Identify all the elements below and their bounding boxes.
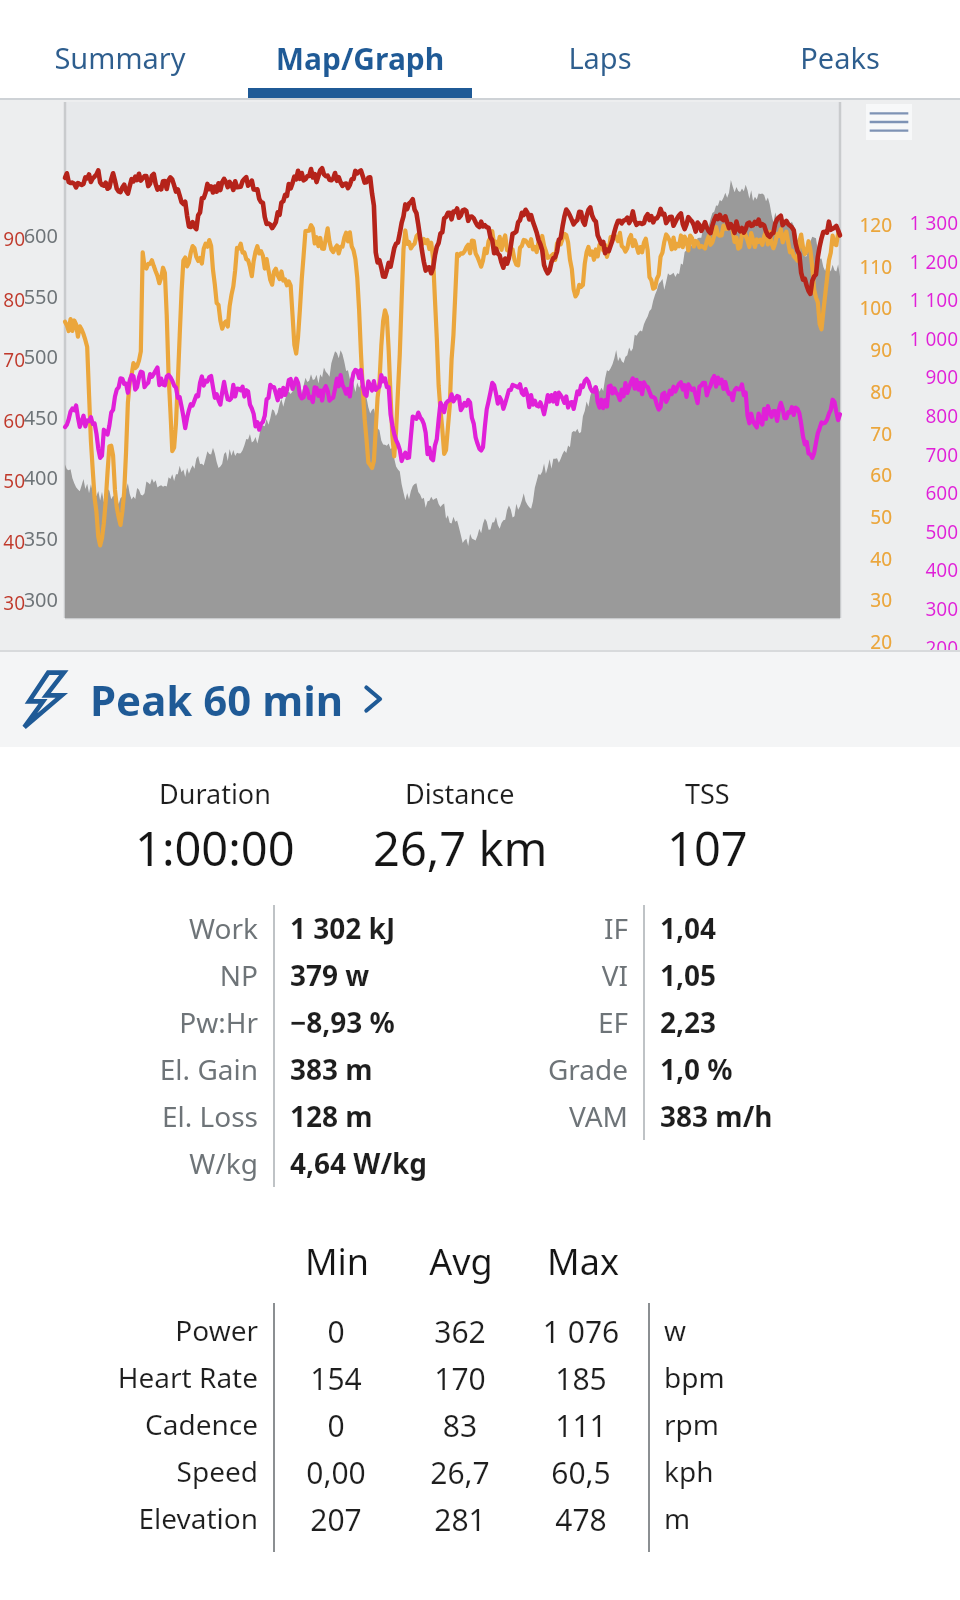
staticText: 400 [0, 464, 58, 491]
staticText: VI [440, 956, 628, 994]
staticText: 1 000 [878, 326, 958, 352]
staticText: kph [664, 1452, 714, 1490]
button[interactable]: Map/Graph [240, 0, 480, 100]
staticText: Cadence [40, 1405, 258, 1443]
staticText: Work [60, 909, 258, 947]
staticText: 128 m [290, 1097, 373, 1135]
staticText: Peaks [720, 38, 960, 77]
staticText: 550 [0, 283, 58, 310]
staticText: TSS [685, 775, 730, 812]
staticText: 60 [848, 462, 892, 488]
staticText: 90 [0, 226, 25, 252]
staticText: bpm [664, 1358, 725, 1396]
staticText: 0 [280, 1405, 392, 1446]
other: Peak power [16, 669, 68, 729]
staticText: 90 [848, 337, 892, 363]
button[interactable]: Laps [480, 0, 720, 100]
staticText: 500 [0, 343, 58, 370]
staticText: 26,7 km [373, 816, 548, 879]
staticText: 4,64 W/kg [290, 1144, 428, 1182]
staticText: 110 [848, 254, 892, 280]
staticText: 70 [848, 421, 892, 447]
button[interactable]: Summary [0, 0, 240, 100]
staticText: 700 [878, 442, 958, 468]
staticText: Summary [0, 38, 240, 77]
staticText: 362 [404, 1311, 516, 1352]
staticText: 70 [0, 347, 25, 373]
staticText: 500 [878, 519, 958, 545]
staticText: 800 [878, 403, 958, 429]
staticText: 1:00:00 [135, 816, 295, 879]
staticText: 20 [0, 650, 25, 676]
staticText: Duration [159, 775, 271, 812]
staticText: El. Loss [60, 1097, 258, 1135]
staticText: 478 [516, 1499, 646, 1540]
staticText: 300 [878, 596, 958, 622]
button[interactable]: Chart legend [866, 104, 912, 140]
staticText: 207 [280, 1499, 392, 1540]
staticText: 40 [0, 529, 25, 555]
staticText: VAM [440, 1097, 628, 1135]
staticText: 26,7 [404, 1452, 516, 1493]
staticText: EF [440, 1003, 628, 1041]
staticText: 50 [0, 468, 25, 494]
staticText: W/kg [60, 1144, 258, 1182]
staticText: 20 [848, 629, 892, 655]
staticText: 379 w [290, 956, 370, 994]
staticText: 60,5 [516, 1452, 646, 1493]
staticText: 80 [848, 379, 892, 405]
button[interactable]: Peak power [0, 650, 960, 747]
staticText: 383 m [290, 1050, 373, 1088]
staticText: Pw:Hr [60, 1003, 258, 1041]
staticText: 50 [848, 504, 892, 530]
staticText: 1 100 [878, 287, 958, 313]
staticText: IF [440, 909, 628, 947]
staticText: 2,23 [660, 1003, 717, 1041]
staticText: 83 [404, 1405, 516, 1446]
staticText: rpm [664, 1405, 719, 1443]
staticText: 250 [0, 646, 58, 673]
staticText: 60 [0, 408, 25, 434]
staticText: 0 [280, 1311, 392, 1352]
staticText: 1 302 kJ [290, 909, 396, 947]
staticText: 1 300 [878, 210, 958, 236]
staticText: 350 [0, 525, 58, 552]
staticText: 80 [0, 287, 25, 313]
staticText: Laps [480, 38, 720, 77]
staticText: 10 [0, 711, 25, 737]
staticText: 185 [516, 1358, 646, 1399]
staticText: 1,0 % [660, 1050, 733, 1088]
staticText: 600 [0, 222, 58, 249]
staticText: Distance [405, 775, 515, 812]
staticText: −8,93 % [290, 1003, 395, 1041]
button[interactable]: Peaks [720, 0, 960, 100]
staticText: m [664, 1499, 691, 1537]
staticText: Elevation [40, 1499, 258, 1537]
staticText: 300 [0, 586, 58, 613]
staticText: 450 [0, 404, 58, 431]
staticText: 100 [848, 295, 892, 321]
staticText: 120 [848, 212, 892, 238]
staticText: Peak 60 min [90, 671, 344, 728]
staticText: 383 m/h [660, 1097, 773, 1135]
staticText: Power [40, 1311, 258, 1349]
staticText: 281 [404, 1499, 516, 1540]
staticText: 900 [878, 364, 958, 390]
staticText: Max [514, 1237, 652, 1286]
staticText: NP [60, 956, 258, 994]
staticText: Speed [40, 1452, 258, 1490]
staticText: 154 [280, 1358, 392, 1399]
staticText: 40 [848, 546, 892, 572]
staticText: 1,04 [660, 909, 717, 947]
staticText: 30 [0, 590, 25, 616]
staticText: 1,05 [660, 956, 717, 994]
staticText: 170 [404, 1358, 516, 1399]
staticText: 1 076 [516, 1311, 646, 1352]
staticText: El. Gain [60, 1050, 258, 1088]
staticText: Grade [440, 1050, 628, 1088]
staticText: 30 [848, 587, 892, 613]
